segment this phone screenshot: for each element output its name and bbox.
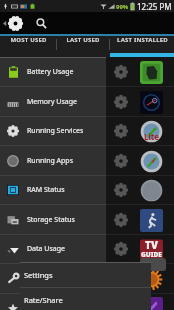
staticText: Settings [27,274,54,284]
button[interactable]: Running Services [0,116,106,146]
button[interactable] [0,264,174,294]
button[interactable]: Storage Status [0,205,106,235]
staticText: Rate/Share [24,295,63,305]
staticText: MOST USED [10,36,47,44]
staticText: LAST USED [66,36,100,44]
staticText: Storage Status [27,215,75,225]
button[interactable]: RAM Status [0,175,106,205]
button[interactable] [0,146,174,176]
staticText: TV [145,238,158,252]
button[interactable]: Search [31,12,51,34]
staticText: Settings [24,270,53,280]
button[interactable]: Data Usage [0,234,106,264]
button[interactable] [0,293,174,310]
button[interactable]: TV [0,234,174,264]
button[interactable]: Navigate up [0,16,25,31]
button[interactable]: Lite [0,116,174,146]
button[interactable]: Battery Usage [0,57,106,87]
button[interactable] [0,205,174,235]
button[interactable]: Settings [0,264,106,294]
button[interactable]: Memory Usage [0,87,106,117]
staticText: Battery Usage [27,67,74,77]
staticText: Running Services [27,126,84,136]
staticText: Memory Usage [27,97,78,107]
button[interactable] [0,175,174,205]
staticText: 12:25 PM [137,1,172,12]
staticText: Running Apps [27,156,74,166]
button[interactable]: LAST USED [57,36,109,44]
other: Navigate up [2,19,7,28]
staticText: Data Usage [27,244,65,254]
button[interactable]: Running Apps [0,146,106,176]
button[interactable] [0,87,174,117]
button[interactable]: Rate/Share [20,288,151,310]
button[interactable]: Rate/Share [0,293,106,310]
staticText: 99% [116,3,129,11]
staticText: Lite [144,131,160,142]
button[interactable]: Settings [20,263,151,287]
staticText: LAST INSTALLED [117,36,168,44]
button[interactable] [0,57,174,87]
button[interactable]: LAST INSTALLED [110,36,174,44]
staticText: RAM Status [27,185,65,195]
button[interactable]: MOST USED [0,36,56,44]
staticText: GUIDE [141,250,162,259]
